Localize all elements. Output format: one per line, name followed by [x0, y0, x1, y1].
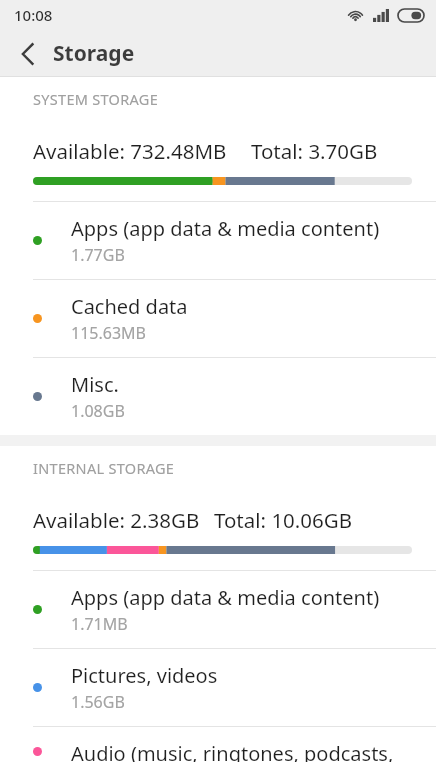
staticText: Available: 2.38GB	[33, 506, 200, 534]
button[interactable]: Misc.	[0, 358, 436, 435]
staticText: INTERNAL STORAGE	[33, 458, 175, 478]
staticText: 1.77GB	[71, 244, 125, 266]
staticText: Total: 3.70GB	[251, 137, 378, 165]
button[interactable]: Pictures, videos	[0, 649, 436, 726]
staticText: Misc.	[71, 371, 119, 398]
button[interactable]: Audio (music, ringtones, podcasts, etc.)	[0, 727, 436, 775]
button[interactable]: Back	[8, 34, 48, 74]
staticText: Total: 10.06GB	[214, 506, 353, 534]
staticText: 1.08GB	[71, 400, 125, 422]
staticText: 10:08	[14, 5, 53, 25]
staticText: Cached data	[71, 293, 188, 320]
staticText: Apps (app data & media content)	[71, 215, 380, 242]
staticText: Audio (music, ringtones, podcasts, etc.)	[71, 740, 416, 762]
button[interactable]: Apps (app data & media content)	[0, 202, 436, 279]
staticText: Pictures, videos	[71, 662, 218, 689]
button[interactable]: Apps (app data & media content)	[0, 571, 436, 648]
staticText: Storage	[53, 39, 135, 68]
staticText: 1.71MB	[71, 613, 128, 635]
staticText: SYSTEM STORAGE	[33, 89, 159, 109]
staticText: 115.63MB	[71, 322, 146, 344]
staticText: 1.56GB	[71, 691, 125, 713]
staticText: Available: 732.48MB	[33, 137, 227, 165]
button[interactable]: Cached data	[0, 280, 436, 357]
staticText: Apps (app data & media content)	[71, 584, 380, 611]
